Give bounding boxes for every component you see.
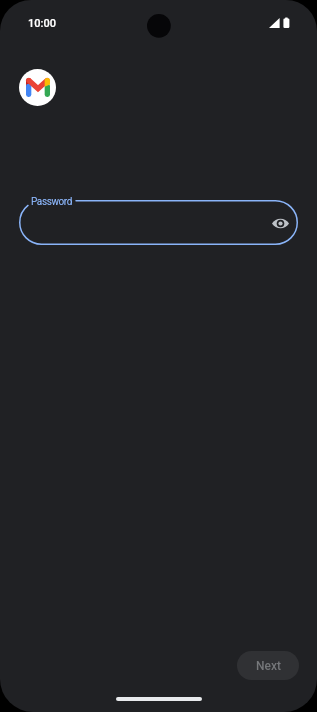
button[interactable]: Next — [237, 651, 299, 680]
staticText: Next — [256, 659, 281, 673]
button[interactable]: Gmail — [19, 69, 56, 106]
button[interactable]: Show password — [267, 210, 293, 236]
staticText: Password — [31, 196, 72, 208]
button[interactable]: Password — [19, 200, 298, 245]
staticText: 10:00 — [28, 17, 56, 30]
